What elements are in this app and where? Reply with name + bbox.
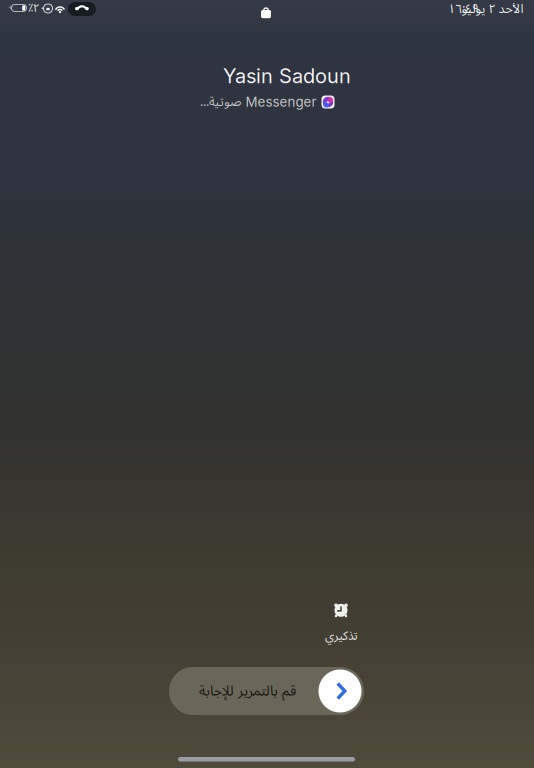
staticText: Yasin Sadoun: [223, 64, 351, 88]
staticText: الأحد ٢ يوليو: [461, 0, 523, 22]
button[interactable]: قم بالتمرير للإجابة: [169, 667, 364, 715]
staticText: تذكيري: [324, 623, 357, 649]
button[interactable]: تذكيري: [297, 604, 385, 646]
staticText: ١٦:٤٩: [448, 0, 479, 22]
staticText: قم بالتمرير للإجابة: [198, 676, 295, 706]
staticText: صوتية...: [199, 89, 240, 115]
staticText: Messenger: [245, 94, 316, 110]
staticText: ٪٢٠: [28, 0, 45, 20]
